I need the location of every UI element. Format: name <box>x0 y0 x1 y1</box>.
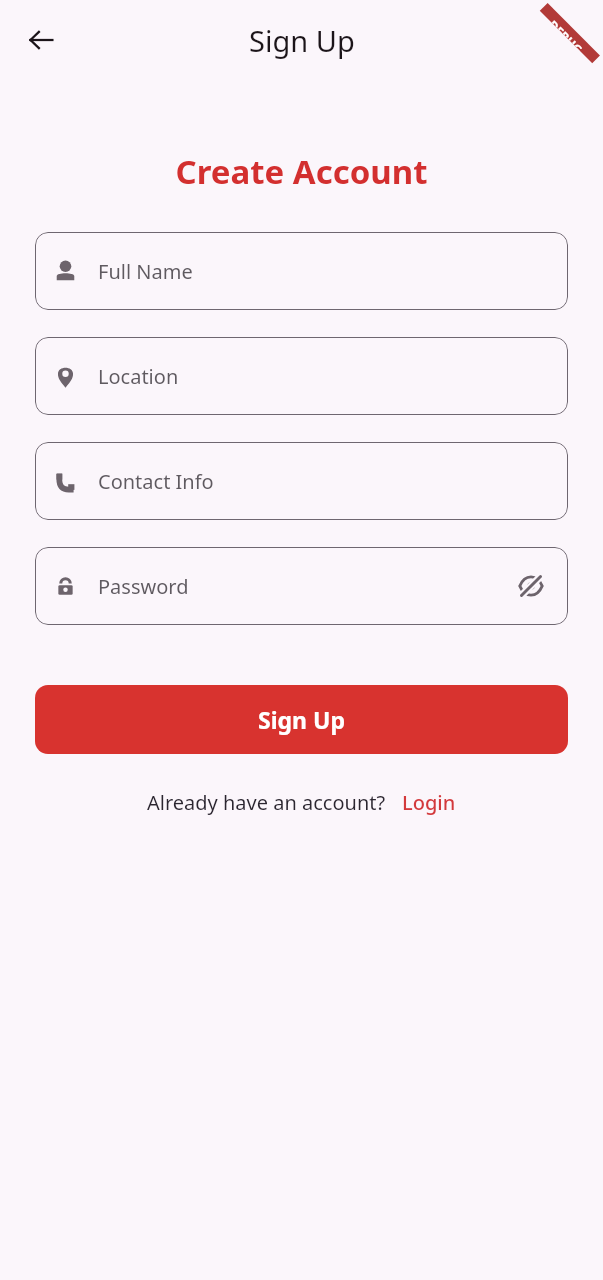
staticText: DEBUG <box>545 16 586 57</box>
button[interactable]: Back <box>13 12 69 68</box>
staticText: Already have an account? <box>147 789 386 816</box>
staticText: Location <box>98 363 179 390</box>
staticText: Sign Up <box>249 21 355 60</box>
staticText: Password <box>98 573 189 600</box>
staticText: Contact Info <box>98 468 214 495</box>
staticText: Sign Up <box>258 704 345 735</box>
staticText: Login <box>402 789 456 816</box>
staticText: Full Name <box>98 258 193 285</box>
button[interactable]: Location <box>35 337 568 415</box>
button[interactable]: Login <box>402 789 456 816</box>
button[interactable]: Sign Up <box>35 685 568 754</box>
button[interactable]: Show password <box>511 566 551 606</box>
button[interactable]: Full Name <box>35 232 568 310</box>
button[interactable]: Contact Info <box>35 442 568 520</box>
staticText: Create Account <box>0 149 603 194</box>
button[interactable]: Password <box>35 547 568 625</box>
